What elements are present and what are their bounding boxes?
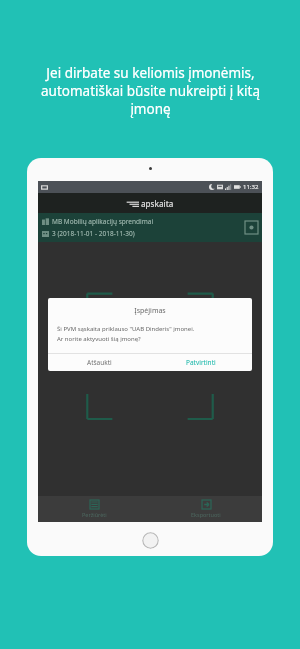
button[interactable]: Atšaukti — [48, 354, 150, 371]
staticText: įmonę — [130, 100, 171, 118]
button[interactable]: Settings — [245, 221, 258, 234]
button[interactable]: Patvirtinti — [150, 354, 252, 371]
staticText: Įspėjimas — [48, 306, 252, 316]
staticText: Patvirtinti — [186, 358, 216, 367]
staticText: apskaita — [141, 198, 174, 209]
staticText: Ši PVM sąskaita priklauso "UAB Dinderis"… — [57, 325, 195, 333]
staticText: Atšaukti — [87, 358, 112, 367]
staticText: Jei dirbate su keliomis įmonėmis, — [46, 64, 255, 82]
staticText: 11:32 — [243, 183, 259, 191]
staticText: Eksportuoti — [191, 511, 221, 518]
button[interactable]: Peržiūrėti — [38, 496, 150, 522]
staticText: Ar norite aktyvuoti šią įmonę? — [57, 335, 141, 343]
staticText: automatiškai būsite nukreipti į kitą — [41, 82, 260, 100]
staticText: Peržiūrėti — [82, 511, 107, 518]
staticText: MB Mobilių aplikacijų sprendimai — [52, 217, 154, 226]
staticText: 3 (2018-11-01 - 2018-11-30) — [52, 229, 135, 238]
button[interactable]: Eksportuoti — [150, 496, 262, 522]
